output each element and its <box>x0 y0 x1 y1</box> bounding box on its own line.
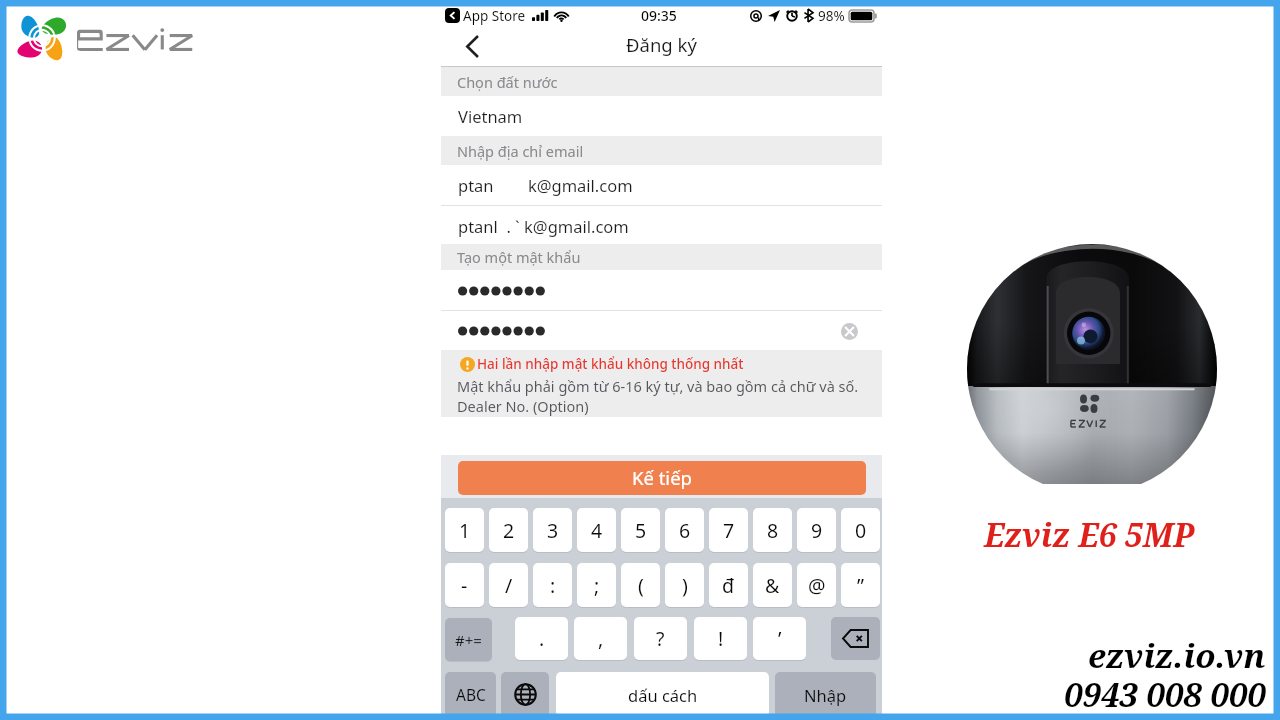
staticText: ? <box>656 625 665 652</box>
staticText: ” <box>857 572 865 599</box>
staticText: 5 <box>635 517 647 544</box>
button[interactable]: 6 <box>665 508 704 552</box>
button[interactable]: ? <box>634 617 687 660</box>
staticText: đ <box>722 572 735 599</box>
button[interactable]: Change keyboard language <box>501 672 549 717</box>
button[interactable]: 1 <box>445 508 484 552</box>
staticText: 09:35 <box>641 6 677 25</box>
staticText: Mật khẩu phải gồm từ 6-16 ký tự, và bao … <box>457 376 859 396</box>
staticText: : <box>550 572 556 599</box>
staticText: Nhập <box>804 684 847 706</box>
staticText: 8 <box>767 517 779 544</box>
staticText: ezviz.io.vn <box>1088 633 1266 678</box>
button[interactable]: Kế tiếp <box>458 461 866 495</box>
button[interactable]: . <box>515 617 568 660</box>
button[interactable]: 5 <box>621 508 660 552</box>
button[interactable]: 4 <box>577 508 616 552</box>
button[interactable]: ptanl . ` k@gmail.com <box>441 206 882 245</box>
staticText: Kế tiếp <box>632 465 692 490</box>
staticText: Tạo một mật khẩu <box>457 247 581 267</box>
button[interactable]: Clear text <box>441 311 882 350</box>
staticText: & <box>765 572 780 599</box>
button[interactable]: 3 <box>533 508 572 552</box>
button[interactable]: ” <box>841 563 880 607</box>
staticText: Ezviz E6 5MP <box>984 513 1195 557</box>
button[interactable]: & <box>753 563 792 607</box>
button[interactable]: - <box>445 563 484 607</box>
button[interactable]: ( <box>621 563 660 607</box>
button[interactable]: ABC <box>445 672 496 717</box>
staticText: Nhập địa chỉ email <box>457 141 584 161</box>
button[interactable]: dấu cách <box>556 672 769 717</box>
button[interactable]: ) <box>665 563 704 607</box>
button[interactable]: Vietnam <box>441 96 882 136</box>
button[interactable]: : <box>533 563 572 607</box>
button[interactable]: Nhập <box>775 672 876 717</box>
button[interactable]: 2 <box>489 508 528 552</box>
staticText: ; <box>594 572 600 599</box>
button[interactable]: , <box>574 617 627 660</box>
staticText: Dealer No. (Option) <box>457 396 589 416</box>
staticText: - <box>461 572 468 599</box>
staticText: . <box>539 625 545 652</box>
button[interactable]: ! <box>694 617 747 660</box>
staticText: 0 <box>855 517 867 544</box>
staticText: ( <box>638 572 644 599</box>
staticText: Chọn đất nước <box>457 72 558 92</box>
staticText: ’ <box>778 625 782 652</box>
staticText: 7 <box>723 517 735 544</box>
staticText: 3 <box>547 517 559 544</box>
button[interactable]: Backspace <box>831 617 880 660</box>
staticText: ABC <box>456 684 486 705</box>
staticText: 1 <box>459 517 471 544</box>
button[interactable]: 8 <box>753 508 792 552</box>
button[interactable] <box>441 271 882 310</box>
staticText: , <box>598 625 604 652</box>
button[interactable]: ; <box>577 563 616 607</box>
staticText: @ <box>808 572 826 599</box>
staticText: 4 <box>591 517 603 544</box>
staticText: 6 <box>679 517 691 544</box>
button[interactable]: #+= <box>445 618 492 661</box>
staticText: ! <box>718 625 724 652</box>
staticText: 0943 008 000 <box>1064 672 1266 717</box>
staticText: Đăng ký <box>626 32 697 57</box>
button[interactable]: Back <box>441 26 503 66</box>
staticText: / <box>505 572 513 599</box>
button[interactable]: Clear text <box>838 320 860 342</box>
button[interactable]: @ <box>797 563 836 607</box>
staticText: dấu cách <box>628 684 698 706</box>
staticText: 98% <box>818 7 845 25</box>
button[interactable]: 0 <box>841 508 880 552</box>
staticText: ptan k@gmail.com <box>458 174 633 196</box>
staticText: ) <box>682 572 688 599</box>
button[interactable]: 7 <box>709 508 748 552</box>
button[interactable]: 9 <box>797 508 836 552</box>
staticText: 9 <box>811 517 823 544</box>
button[interactable]: ’ <box>753 617 806 660</box>
staticText: App Store <box>463 7 526 25</box>
staticText: Vietnam <box>458 105 523 127</box>
staticText: #+= <box>455 630 482 650</box>
staticText: Hai lần nhập mật khẩu không thống nhất <box>477 355 744 373</box>
staticText: ptanl . ` k@gmail.com <box>458 215 629 237</box>
button[interactable]: ptan k@gmail.com <box>441 165 882 205</box>
button[interactable]: đ <box>709 563 748 607</box>
staticText: 2 <box>503 517 515 544</box>
button[interactable]: / <box>489 563 528 607</box>
